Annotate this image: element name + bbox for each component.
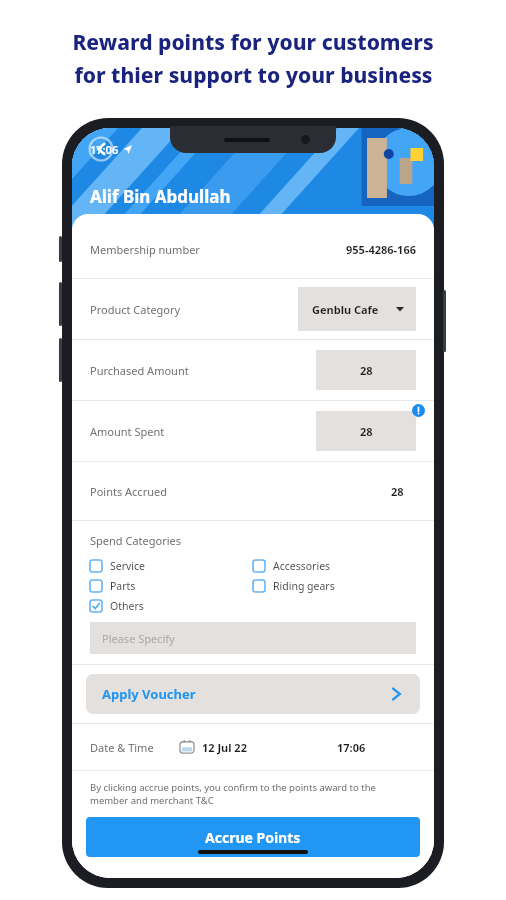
staticText: Alif Bin Abdullah [90,185,231,208]
staticText: Service [110,559,146,573]
staticText: Riding gears [273,579,335,593]
button[interactable]: Accessories [253,556,331,576]
staticText: Spend Categories [90,533,182,548]
button[interactable]: Product Category [72,279,434,339]
staticText: Parts [110,579,136,593]
staticText: Genblu Cafe [312,302,379,317]
button[interactable]: Points Accrued [72,462,434,520]
button[interactable]: Date & Time [72,724,434,770]
button[interactable]: Info [408,400,428,420]
staticText: 955-4286-166 [346,242,416,257]
staticText: 28 [360,424,373,439]
button[interactable]: Apply Voucher [86,674,420,714]
button[interactable]: Service [90,556,146,576]
staticText: Membership number [90,242,200,257]
button[interactable]: Membership number [72,220,434,278]
staticText: Others [110,599,144,613]
button[interactable]: Parts [90,576,136,596]
button[interactable]: Others [90,596,144,616]
staticText: 17:06 [337,740,366,755]
staticText: Points Accrued [90,484,167,499]
button[interactable]: Please Specify [90,622,416,654]
staticText: Product Category [90,302,181,317]
staticText: Please Specify [102,631,175,646]
staticText: Reward points for your customers [72,28,434,57]
button[interactable]: Amount Spent [72,401,434,461]
staticText: 12 Jul 22 [202,740,247,755]
staticText: Accessories [273,559,331,573]
button[interactable]: Back [84,132,118,166]
staticText: Date & Time [90,740,154,755]
button[interactable]: Riding gears [253,576,335,596]
staticText: 17:06 [90,142,119,157]
button[interactable]: Accrue Points [86,817,420,857]
staticText: Amount Spent [90,424,165,439]
staticText: Apply Voucher [102,685,196,703]
staticText: By clicking accrue points, you confirm t… [90,781,416,807]
staticText: 28 [391,484,404,499]
staticText: 28 [360,363,373,378]
staticText: Accrue Points [205,828,301,847]
staticText: for thier support to your business [74,61,433,90]
staticText: Purchased Amount [90,363,189,378]
button[interactable]: Purchased Amount [72,340,434,400]
